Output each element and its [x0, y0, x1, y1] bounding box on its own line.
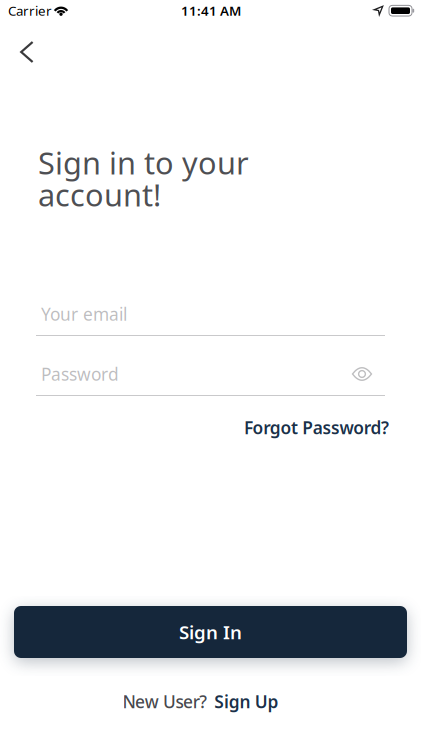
button[interactable]: [10, 31, 44, 73]
staticText: Sign In: [179, 620, 242, 644]
staticText: account!: [38, 174, 161, 215]
button[interactable]: Sign In: [14, 606, 407, 658]
staticText: Your email: [41, 302, 127, 325]
staticText: New User?: [122, 690, 207, 713]
staticText: Sign Up: [214, 690, 278, 713]
staticText: 11:41 AM: [181, 2, 241, 19]
staticText: Password: [41, 362, 119, 385]
staticText: Sign in to your: [38, 142, 249, 183]
button[interactable]: Sign Up: [214, 690, 278, 713]
button[interactable]: Forgot Password?: [169, 416, 389, 439]
button[interactable]: Password: [35, 354, 386, 396]
button[interactable]: [351, 365, 373, 383]
staticText: Carrier: [8, 2, 52, 19]
button[interactable]: Your email: [35, 294, 386, 336]
staticText: Forgot Password?: [244, 416, 389, 439]
